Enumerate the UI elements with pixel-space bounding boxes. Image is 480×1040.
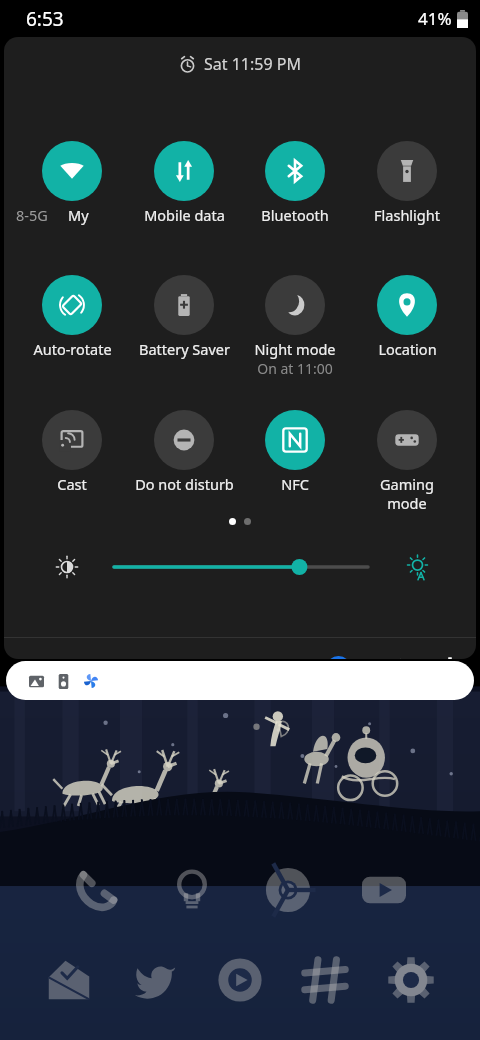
staticText: Location [378, 339, 437, 359]
button[interactable]: Night mode [265, 275, 325, 335]
staticText: On at 11:00 [257, 359, 333, 378]
staticText: Gaming mode [380, 474, 434, 513]
button[interactable]: Twitter [125, 950, 185, 1010]
button[interactable]: Bluetooth [265, 141, 325, 201]
staticText: 6:53 [26, 6, 64, 32]
button[interactable]: Auto brightness [405, 555, 430, 580]
staticText: Flashlight [374, 205, 440, 225]
button[interactable]: Cast [42, 410, 102, 470]
staticText: My [68, 205, 89, 225]
button[interactable]: Settings [381, 950, 441, 1010]
staticText: Sat 11:59 PM [204, 53, 301, 75]
staticText: Mobile data [144, 205, 225, 225]
staticText: Night mode [254, 339, 336, 359]
staticText: Cast [57, 474, 87, 494]
button[interactable]: Phone [66, 860, 126, 920]
button[interactable]: User account [322, 652, 354, 659]
staticText: Do not disturb [135, 474, 234, 494]
button[interactable]: YouTube [354, 860, 414, 920]
button[interactable]: Play Music [210, 950, 270, 1010]
button[interactable]: Notes [162, 860, 222, 920]
button[interactable]: Gaming mode [377, 410, 437, 470]
button[interactable]: Slack [295, 950, 355, 1010]
button[interactable]: Location [377, 275, 437, 335]
staticText: Battery Saver [139, 339, 230, 359]
staticText: 8-5G [16, 205, 48, 225]
button[interactable]: Inbox [39, 950, 99, 1010]
button[interactable]: Chrome [258, 860, 318, 920]
button[interactable]: Battery Saver [154, 275, 214, 335]
button[interactable]: NFC [265, 410, 325, 470]
button[interactable] [6, 661, 474, 700]
button[interactable]: Wi-Fi [42, 141, 102, 201]
button[interactable]: Do not disturb [154, 410, 214, 470]
button[interactable]: Settings [434, 652, 466, 659]
button[interactable]: Mobile data [154, 141, 214, 201]
staticText: Bluetooth [261, 205, 329, 225]
button[interactable]: Brightness [114, 555, 368, 579]
staticText: Auto-rotate [33, 339, 112, 359]
staticText: 41% [418, 7, 452, 30]
staticText: NFC [281, 474, 309, 494]
button[interactable]: Auto-rotate [42, 275, 102, 335]
button[interactable]: Flashlight [377, 141, 437, 201]
